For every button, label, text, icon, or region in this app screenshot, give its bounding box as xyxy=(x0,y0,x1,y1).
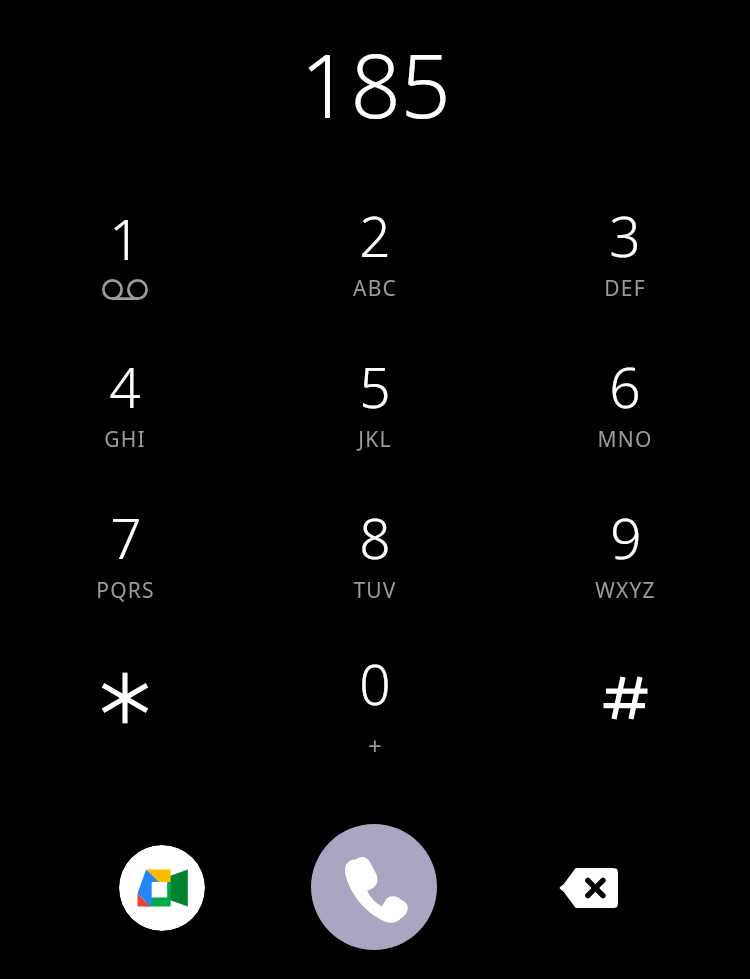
button[interactable]: 8 xyxy=(250,477,500,628)
staticText: 6 xyxy=(609,349,641,424)
staticText: 2 xyxy=(359,198,391,273)
button[interactable]: Call xyxy=(311,824,437,950)
staticText: + xyxy=(368,729,383,762)
staticText: DEF xyxy=(604,274,646,303)
staticText: 1 xyxy=(109,201,141,276)
staticText: 185 xyxy=(300,24,451,144)
staticText: ABC xyxy=(353,274,397,303)
button[interactable]: 5 xyxy=(250,326,500,477)
button[interactable]: Backspace xyxy=(542,856,636,920)
button[interactable]: 3 xyxy=(500,175,750,326)
staticText: TUV xyxy=(353,576,397,605)
button[interactable] xyxy=(0,628,250,779)
staticText: 8 xyxy=(359,500,391,575)
button[interactable] xyxy=(500,628,750,779)
staticText: 3 xyxy=(609,198,641,273)
button[interactable]: 0 xyxy=(250,628,500,779)
staticText: WXYZ xyxy=(595,576,656,605)
button[interactable]: 9 xyxy=(500,477,750,628)
button[interactable]: 4 xyxy=(0,326,250,477)
staticText: PQRS xyxy=(96,576,155,605)
staticText: 9 xyxy=(610,500,642,575)
staticText: MNO xyxy=(597,425,653,454)
staticText: 0 xyxy=(359,646,391,721)
button[interactable]: 7 xyxy=(0,477,250,628)
staticText: JKL xyxy=(358,425,392,454)
button[interactable]: 2 xyxy=(250,175,500,326)
staticText: 5 xyxy=(359,349,391,424)
button[interactable]: 6 xyxy=(500,326,750,477)
staticText: GHI xyxy=(104,425,146,454)
staticText: 7 xyxy=(110,500,142,575)
button[interactable]: 1 xyxy=(0,175,250,326)
button[interactable]: Video call with Meet xyxy=(119,845,205,931)
staticText: 4 xyxy=(109,349,141,424)
